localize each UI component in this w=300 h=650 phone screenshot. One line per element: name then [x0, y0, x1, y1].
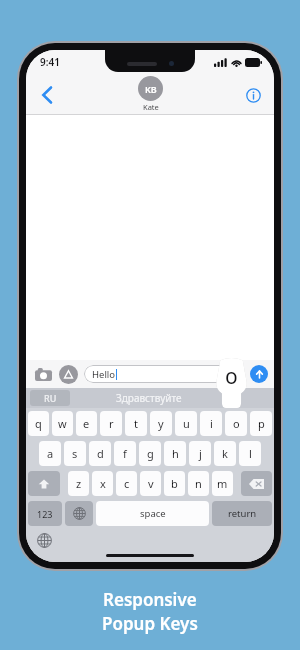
button[interactable]: Hello — [84, 365, 245, 383]
staticText: r — [109, 416, 114, 431]
button[interactable]: return — [212, 501, 272, 526]
button[interactable]: v — [140, 471, 161, 496]
staticText: o — [233, 416, 240, 431]
staticText: 123 — [37, 508, 53, 520]
staticText: v — [148, 476, 154, 491]
staticText: Здравствуйте — [116, 391, 182, 405]
button[interactable]: k — [214, 441, 236, 466]
button[interactable]: App Store — [59, 365, 78, 384]
button[interactable]: h — [164, 441, 186, 466]
button[interactable]: b — [164, 471, 185, 496]
button[interactable]: y — [150, 411, 172, 436]
button[interactable]: n — [188, 471, 209, 496]
staticText: k — [222, 446, 228, 461]
staticText: Responsive — [103, 588, 197, 611]
button[interactable]: t — [125, 411, 147, 436]
staticText: a — [47, 446, 54, 461]
staticText: y — [158, 416, 164, 431]
button[interactable]: i — [200, 411, 222, 436]
staticText: f — [123, 446, 127, 461]
button[interactable]: q — [28, 411, 49, 436]
button[interactable]: KB — [138, 76, 163, 112]
button[interactable]: Camera — [32, 363, 54, 385]
button[interactable]: Back — [32, 80, 62, 110]
button[interactable]: o — [225, 411, 247, 436]
button[interactable]: r — [100, 411, 122, 436]
button[interactable]: Emoji keyboard — [34, 530, 54, 550]
staticText: i — [210, 416, 213, 431]
button[interactable]: p — [250, 411, 272, 436]
button[interactable]: c — [116, 471, 137, 496]
button[interactable]: m — [212, 471, 233, 496]
staticText: KB — [145, 83, 157, 95]
button[interactable]: u — [175, 411, 197, 436]
staticText: 9:41 — [40, 55, 60, 69]
staticText: Hello — [92, 368, 116, 381]
staticText: e — [83, 416, 90, 431]
button[interactable]: RU — [30, 390, 70, 406]
button[interactable]: x — [92, 471, 113, 496]
button[interactable]: 123 — [28, 501, 62, 526]
button[interactable]: Send — [250, 365, 268, 383]
staticText: w — [58, 416, 67, 431]
button[interactable]: Change keyboard — [65, 501, 93, 526]
staticText: q — [35, 416, 42, 431]
staticText: l — [249, 446, 252, 461]
staticText: g — [147, 446, 154, 461]
staticText: Popup Keys — [102, 612, 198, 635]
staticText: d — [97, 446, 104, 461]
staticText: m — [217, 476, 228, 491]
staticText: c — [124, 476, 130, 491]
button[interactable]: g — [139, 441, 161, 466]
button[interactable]: j — [189, 441, 211, 466]
button[interactable]: d — [89, 441, 111, 466]
staticText: o — [225, 362, 238, 391]
staticText: z — [76, 476, 82, 491]
staticText: t — [134, 416, 138, 431]
button[interactable]: w — [52, 411, 73, 436]
button[interactable]: e — [76, 411, 97, 436]
staticText: space — [140, 507, 166, 520]
button[interactable]: f — [114, 441, 136, 466]
button[interactable]: Info — [240, 82, 266, 108]
staticText: j — [199, 446, 202, 461]
staticText: p — [258, 416, 265, 431]
staticText: h — [172, 446, 179, 461]
button[interactable]: a — [39, 441, 61, 466]
button[interactable]: Shift — [28, 471, 60, 496]
staticText: return — [228, 507, 257, 520]
button[interactable]: l — [239, 441, 261, 466]
staticText: b — [171, 476, 178, 491]
staticText: s — [72, 446, 78, 461]
button[interactable]: Delete — [241, 471, 272, 496]
button[interactable]: s — [64, 441, 86, 466]
staticText: RU — [44, 392, 57, 404]
staticText: u — [183, 416, 190, 431]
staticText: x — [100, 476, 106, 491]
button[interactable]: z — [68, 471, 89, 496]
button[interactable]: Здравствуйте — [70, 391, 228, 405]
staticText: Kate — [143, 102, 159, 112]
button[interactable]: space — [96, 501, 209, 526]
staticText: n — [195, 476, 202, 491]
